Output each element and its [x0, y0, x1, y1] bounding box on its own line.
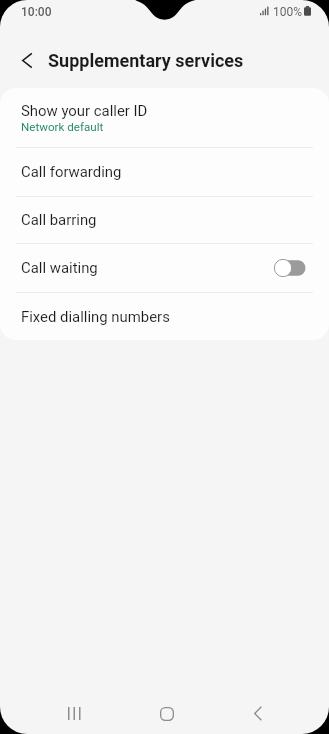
staticText: Network default	[21, 120, 104, 134]
staticText: 100%	[273, 5, 303, 19]
button[interactable]: Navigate up	[9, 42, 45, 78]
staticText: Show your caller ID	[21, 102, 148, 119]
button[interactable]: Call waiting	[0, 243, 329, 292]
button[interactable]: Fixed dialling numbers	[0, 292, 329, 340]
staticText: Call waiting	[21, 259, 98, 276]
button[interactable]: Back	[234, 693, 282, 734]
staticText: Supplementary services	[48, 50, 244, 71]
staticText: Call barring	[21, 211, 97, 228]
button[interactable]: Recent apps	[50, 693, 98, 734]
staticText: Fixed dialling numbers	[21, 308, 170, 325]
button[interactable]: Call barring	[0, 196, 329, 243]
button[interactable]: Call forwarding	[0, 147, 329, 196]
button[interactable]: Home	[143, 693, 191, 734]
staticText: 10:00	[21, 5, 52, 19]
staticText: Call forwarding	[21, 163, 122, 180]
button[interactable]: Show your caller ID	[0, 88, 329, 147]
